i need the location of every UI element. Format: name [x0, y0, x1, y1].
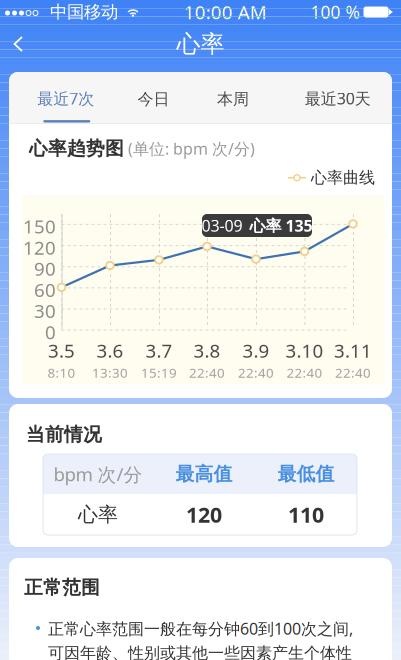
- staticText: 3.10: [285, 338, 323, 363]
- staticText: 心率趋势图: [29, 137, 124, 160]
- staticText: 心率: [78, 502, 118, 527]
- staticText: 本周: [217, 89, 249, 109]
- staticText: 最近7次: [37, 88, 94, 109]
- staticText: 最低值: [277, 462, 334, 485]
- staticText: 22:40: [286, 364, 322, 381]
- staticText: 3.8: [193, 338, 220, 363]
- button[interactable]: 最近7次: [9, 72, 123, 123]
- staticText: 最高值: [175, 462, 232, 485]
- staticText: 100 %: [310, 0, 359, 23]
- staticText: (单位: bpm 次/分): [128, 138, 255, 159]
- staticText: 120: [186, 500, 222, 529]
- staticText: 60: [34, 277, 56, 302]
- staticText: bpm 次/分: [53, 462, 142, 486]
- staticText: 正常心率范围一般在每分钟60到100次之间,: [48, 618, 353, 639]
- button[interactable]: 今日: [123, 72, 184, 123]
- staticText: 心率: [176, 29, 224, 59]
- staticText: 心率 135: [249, 215, 312, 236]
- staticText: 10:00 AM: [184, 0, 267, 24]
- staticText: 3.9: [242, 338, 269, 363]
- staticText: 13:30: [92, 364, 128, 381]
- staticText: 中国移动: [50, 1, 118, 23]
- staticText: 当前情况: [26, 423, 102, 446]
- staticText: 3.5: [48, 338, 75, 363]
- staticText: 3.11: [334, 338, 372, 363]
- staticText: 22:40: [238, 364, 274, 381]
- staticText: 90: [34, 256, 56, 281]
- button[interactable]: 最近30天: [282, 72, 394, 123]
- staticText: 110: [288, 500, 324, 529]
- staticText: 03-09: [201, 215, 242, 236]
- button[interactable]: 本周: [184, 72, 282, 123]
- staticText: 8:10: [47, 364, 75, 381]
- staticText: 今日: [137, 89, 169, 109]
- staticText: 22:40: [335, 364, 371, 381]
- button[interactable]: Back: [0, 24, 37, 64]
- staticText: 120: [23, 235, 56, 260]
- staticText: 15:19: [141, 364, 177, 381]
- staticText: 心率曲线: [311, 168, 375, 188]
- staticText: 150: [23, 214, 56, 239]
- staticText: 30: [34, 298, 56, 323]
- staticText: 3.6: [96, 338, 123, 363]
- staticText: 最近30天: [305, 88, 371, 109]
- staticText: 可因年龄、性别或其他一些因素产生个体性: [48, 643, 352, 660]
- staticText: 0: [45, 320, 56, 344]
- staticText: 22:40: [189, 364, 225, 381]
- staticText: 正常范围: [24, 576, 100, 599]
- staticText: 3.7: [145, 338, 172, 363]
